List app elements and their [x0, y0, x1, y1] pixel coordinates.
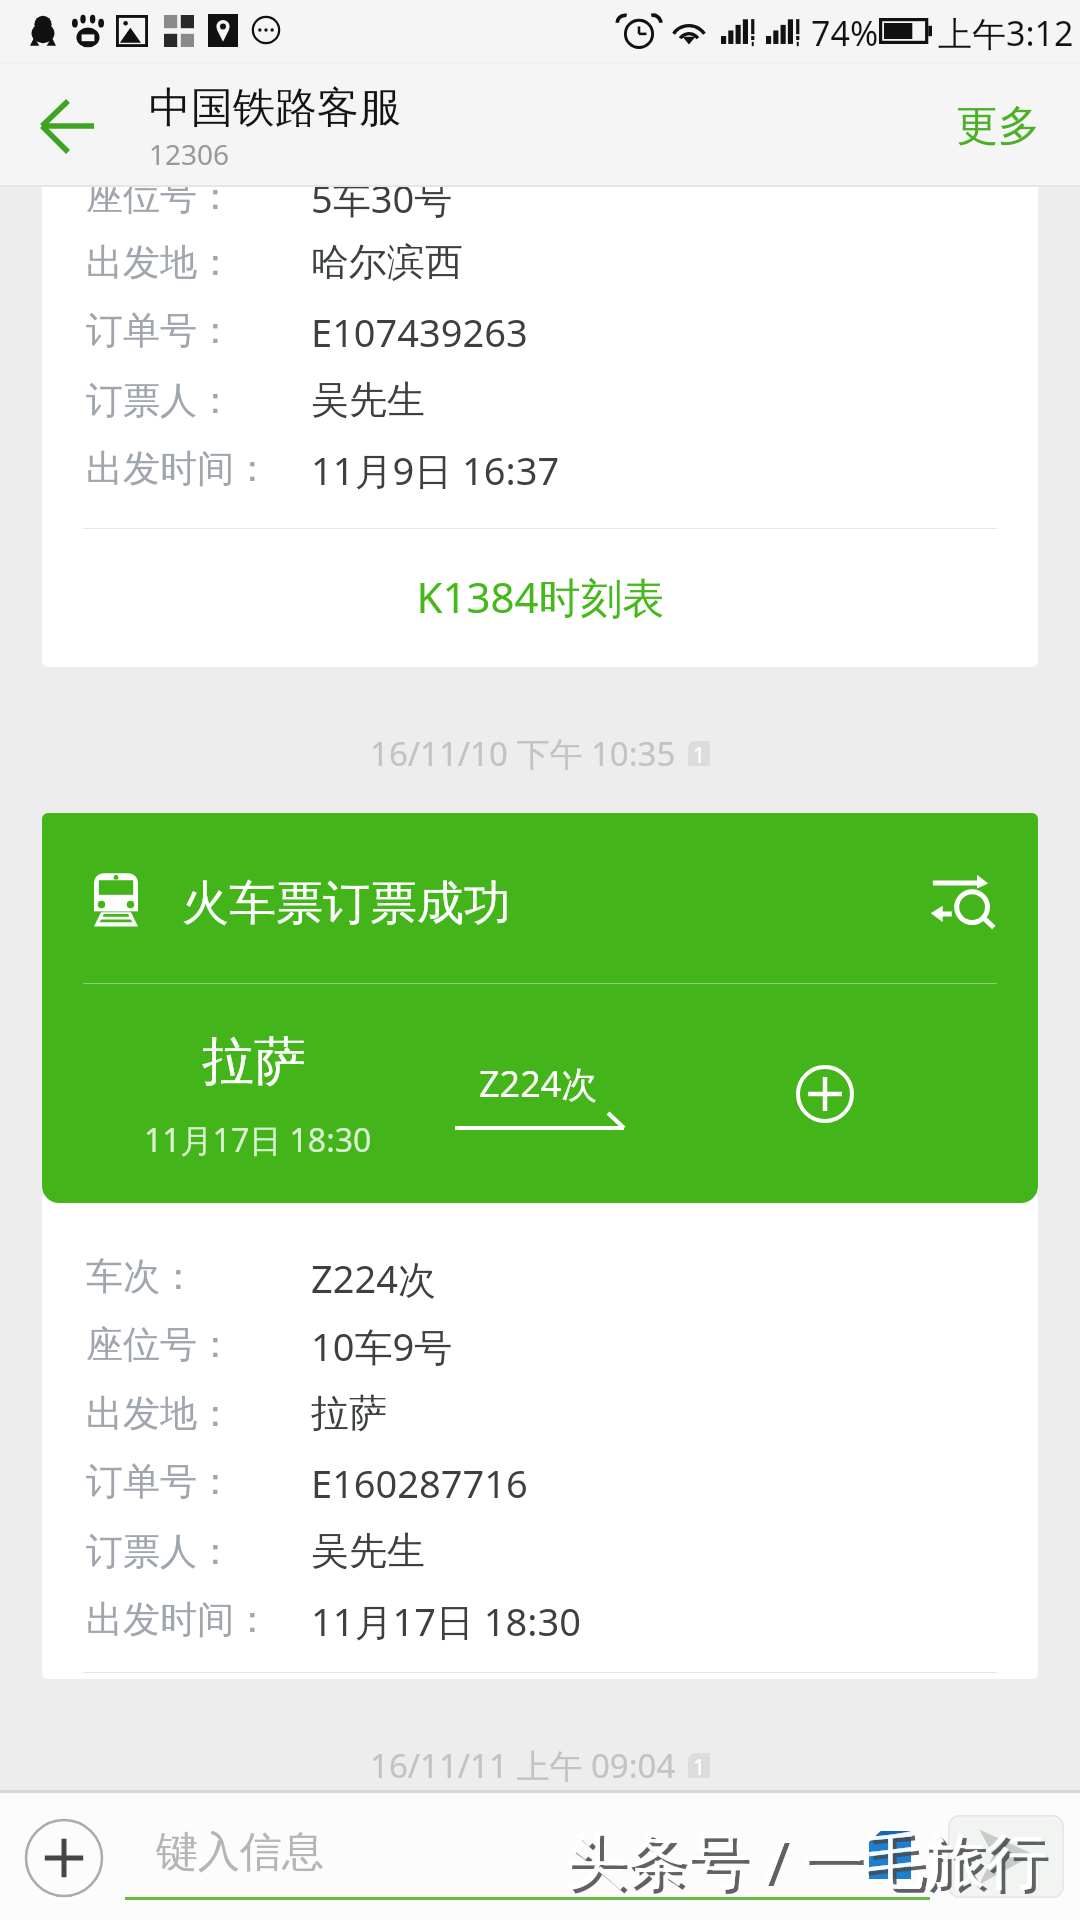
staticText: 座位号：	[86, 187, 234, 220]
staticText: 1	[693, 741, 706, 766]
staticText: 吴先生	[311, 376, 425, 424]
staticText: 11月9日 16:37	[311, 444, 560, 496]
button[interactable]: 火车票订票成功	[42, 813, 1038, 1203]
button[interactable]: Back	[22, 86, 110, 166]
staticText: 车次：	[86, 1253, 197, 1300]
staticText: 订单号：	[86, 1458, 234, 1505]
staticText: 座位号：	[86, 1321, 234, 1368]
staticText: 订票人：	[86, 1528, 234, 1575]
button[interactable]: Send	[948, 1815, 1064, 1898]
staticText: 出发时间：	[86, 1596, 271, 1643]
staticText: 拉萨	[202, 1029, 306, 1095]
staticText: 11月17日 18:30	[311, 1595, 581, 1647]
staticText: 头条号 / 一毛旅行	[565, 1817, 1047, 1900]
staticText: E107439263	[311, 306, 528, 358]
staticText: Z224次	[479, 1059, 598, 1108]
button[interactable]: 更多	[956, 100, 1040, 153]
staticText: 16/11/11 上午 09:04	[370, 1743, 676, 1788]
button[interactable]: More functions	[24, 1818, 104, 1898]
staticText: 10车9号	[311, 1320, 453, 1372]
button[interactable]: Add	[794, 1063, 856, 1125]
button[interactable]: 车次：	[42, 1195, 1038, 1679]
staticText: 拉萨	[311, 1389, 387, 1437]
staticText: 更多	[956, 100, 1040, 153]
staticText: 出发时间：	[86, 445, 271, 492]
staticText: 键入信息	[156, 1826, 324, 1879]
staticText: 1	[693, 1753, 706, 1778]
staticText: 头条号 / 一毛旅行	[569, 1821, 1051, 1904]
staticText: 16/11/10 下午 10:35	[370, 731, 676, 776]
staticText: 上午3:12	[938, 10, 1074, 56]
staticText: 5车30号	[311, 187, 453, 224]
staticText: 订单号：	[86, 307, 234, 354]
button[interactable]: K1384时刻表	[42, 545, 1038, 655]
staticText: Z224次	[311, 1252, 436, 1304]
staticText: 火车票订票成功	[182, 874, 511, 933]
staticText: 出发地：	[86, 1390, 234, 1437]
button[interactable]: 键入信息	[125, 1810, 930, 1900]
button[interactable]: 座位号：	[42, 187, 1038, 667]
staticText: 74%	[811, 10, 879, 56]
staticText: 哈尔滨西	[311, 238, 463, 286]
button[interactable]: Search	[928, 868, 998, 930]
staticText: 11月17日 18:30	[144, 1118, 372, 1162]
staticText: 订票人：	[86, 377, 234, 424]
staticText: K1384时刻表	[416, 568, 665, 625]
staticText: 中国铁路客服	[149, 82, 401, 135]
staticText: 出发地：	[86, 239, 234, 286]
staticText: 12306	[149, 135, 230, 173]
staticText: 吴先生	[311, 1527, 425, 1575]
staticText: E160287716	[311, 1457, 528, 1509]
